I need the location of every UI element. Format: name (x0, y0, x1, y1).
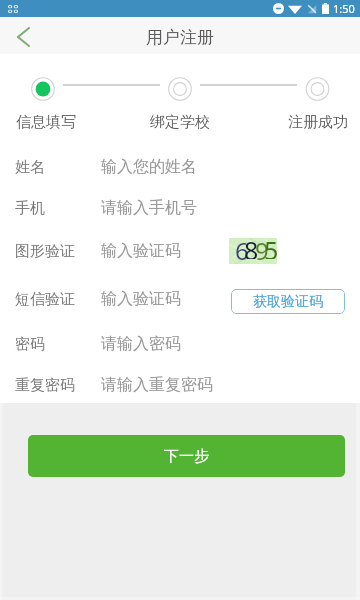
staticText: 5 (264, 233, 279, 259)
staticText: 输入验证码 (101, 241, 181, 261)
staticText: 8 (244, 233, 259, 259)
staticText: 注册成功 (288, 113, 348, 132)
staticText: 请输入密码 (101, 334, 181, 354)
button[interactable]: 姓名 (0, 149, 360, 185)
button[interactable]: 重复密码 (0, 367, 360, 403)
staticText: 输入您的姓名 (101, 157, 197, 177)
button[interactable]: 下一步 (28, 435, 345, 477)
staticText: 请输入手机号 (101, 198, 197, 218)
staticText: 图形验证 (15, 242, 75, 261)
staticText: 重复密码 (15, 376, 75, 395)
staticText: 信息填写 (16, 113, 76, 132)
staticText: 短信验证 (15, 290, 75, 309)
button[interactable]: 注册成功 (278, 112, 358, 132)
button[interactable]: 绑定学校 (140, 112, 220, 132)
staticText: 获取验证码 (253, 293, 323, 311)
staticText: 请输入重复密码 (101, 375, 213, 395)
button[interactable]: 短信验证 (0, 281, 360, 317)
staticText: 绑定学校 (150, 113, 210, 132)
button[interactable]: Refresh captcha (229, 238, 277, 264)
button[interactable]: 信息填写 (6, 112, 86, 132)
staticText: 用户注册 (146, 27, 214, 48)
staticText: 1:50 (333, 1, 355, 16)
button[interactable]: 图形验证 (0, 233, 360, 269)
button[interactable]: Back (0, 17, 46, 54)
button[interactable]: 密码 (0, 326, 360, 362)
button[interactable]: 获取验证码 (231, 289, 345, 314)
staticText: 姓名 (15, 158, 45, 177)
staticText: 6 (235, 234, 249, 260)
staticText: 9 (255, 234, 269, 260)
staticText: 下一步 (164, 447, 209, 466)
staticText: 输入验证码 (101, 289, 181, 309)
staticText: 密码 (15, 335, 45, 354)
button[interactable]: 手机 (0, 190, 360, 226)
staticText: 手机 (15, 199, 45, 218)
